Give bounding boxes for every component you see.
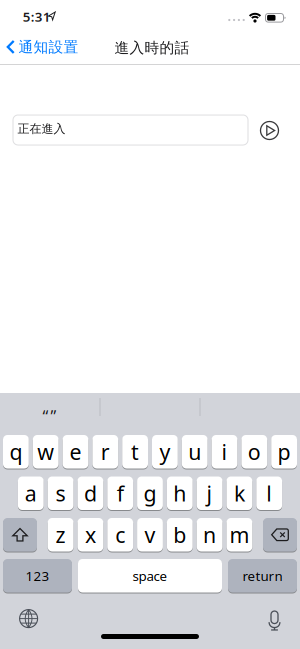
button[interactable]: return	[228, 558, 297, 593]
button[interactable]: Shift	[3, 517, 37, 552]
staticText: t	[131, 438, 139, 466]
button[interactable]: h	[167, 476, 193, 510]
button[interactable]: w	[33, 434, 59, 469]
button[interactable]: c	[107, 517, 133, 552]
staticText: 進入時的話	[114, 39, 189, 57]
staticText: 5:31	[23, 8, 51, 25]
button[interactable]: Next keyboard	[14, 604, 44, 634]
button[interactable]: o	[241, 434, 267, 469]
button[interactable]: v	[137, 517, 163, 552]
staticText: space	[132, 567, 167, 585]
button[interactable]: q	[3, 434, 29, 469]
button[interactable]: m	[226, 517, 252, 552]
button[interactable]: i	[212, 434, 237, 469]
staticText: z	[56, 521, 66, 549]
staticText: “ ”	[42, 405, 56, 427]
staticText: c	[115, 521, 125, 549]
staticText: v	[144, 521, 155, 549]
button[interactable]: u	[182, 434, 208, 469]
button[interactable]: Delete	[263, 517, 297, 552]
staticText: i	[221, 438, 227, 466]
button[interactable]: Text field	[13, 115, 248, 145]
staticText: f	[117, 479, 124, 507]
button[interactable]: e	[63, 434, 88, 469]
button[interactable]: n	[197, 517, 222, 552]
staticText: h	[173, 479, 186, 507]
staticText: s	[56, 479, 66, 507]
staticText: e	[69, 438, 81, 466]
button[interactable]: j	[197, 476, 222, 510]
button[interactable]: p	[271, 434, 297, 469]
staticText: g	[143, 479, 156, 507]
button[interactable]: a	[18, 476, 44, 510]
button[interactable]: g	[137, 476, 163, 510]
staticText: w	[37, 438, 54, 466]
staticText: q	[9, 438, 22, 466]
button[interactable]: Back	[6, 37, 78, 57]
staticText: d	[84, 479, 97, 507]
button[interactable]: x	[77, 517, 103, 552]
staticText: u	[188, 438, 201, 466]
button[interactable]: k	[226, 476, 252, 510]
staticText: m	[229, 521, 249, 549]
button[interactable]: z	[48, 517, 73, 552]
button[interactable]: r	[92, 434, 118, 469]
button[interactable]: f	[107, 476, 133, 510]
button[interactable]: y	[152, 434, 178, 469]
staticText: x	[85, 521, 96, 549]
staticText: return	[242, 567, 282, 585]
staticText: 123	[25, 567, 49, 585]
button[interactable]: l	[256, 476, 282, 510]
button[interactable]: s	[48, 476, 73, 510]
staticText: a	[25, 479, 37, 507]
staticText: b	[173, 521, 186, 549]
staticText: r	[101, 438, 110, 466]
button[interactable]: Dictate	[259, 605, 289, 635]
button[interactable]: Play	[260, 121, 279, 140]
staticText: o	[248, 438, 261, 466]
staticText: 通知設置	[18, 38, 78, 56]
button[interactable]: t	[122, 434, 148, 469]
staticText: p	[278, 438, 291, 466]
staticText: n	[203, 521, 216, 549]
button[interactable]: Candidate quotes	[0, 404, 98, 428]
staticText: l	[266, 479, 272, 507]
staticText: 正在進入	[17, 121, 65, 136]
button[interactable]: 123	[3, 558, 72, 593]
staticText: k	[234, 479, 245, 507]
staticText: j	[207, 479, 213, 507]
button[interactable]: space	[78, 558, 222, 593]
staticText: y	[159, 438, 170, 466]
button[interactable]: d	[77, 476, 103, 510]
button[interactable]: b	[167, 517, 193, 552]
